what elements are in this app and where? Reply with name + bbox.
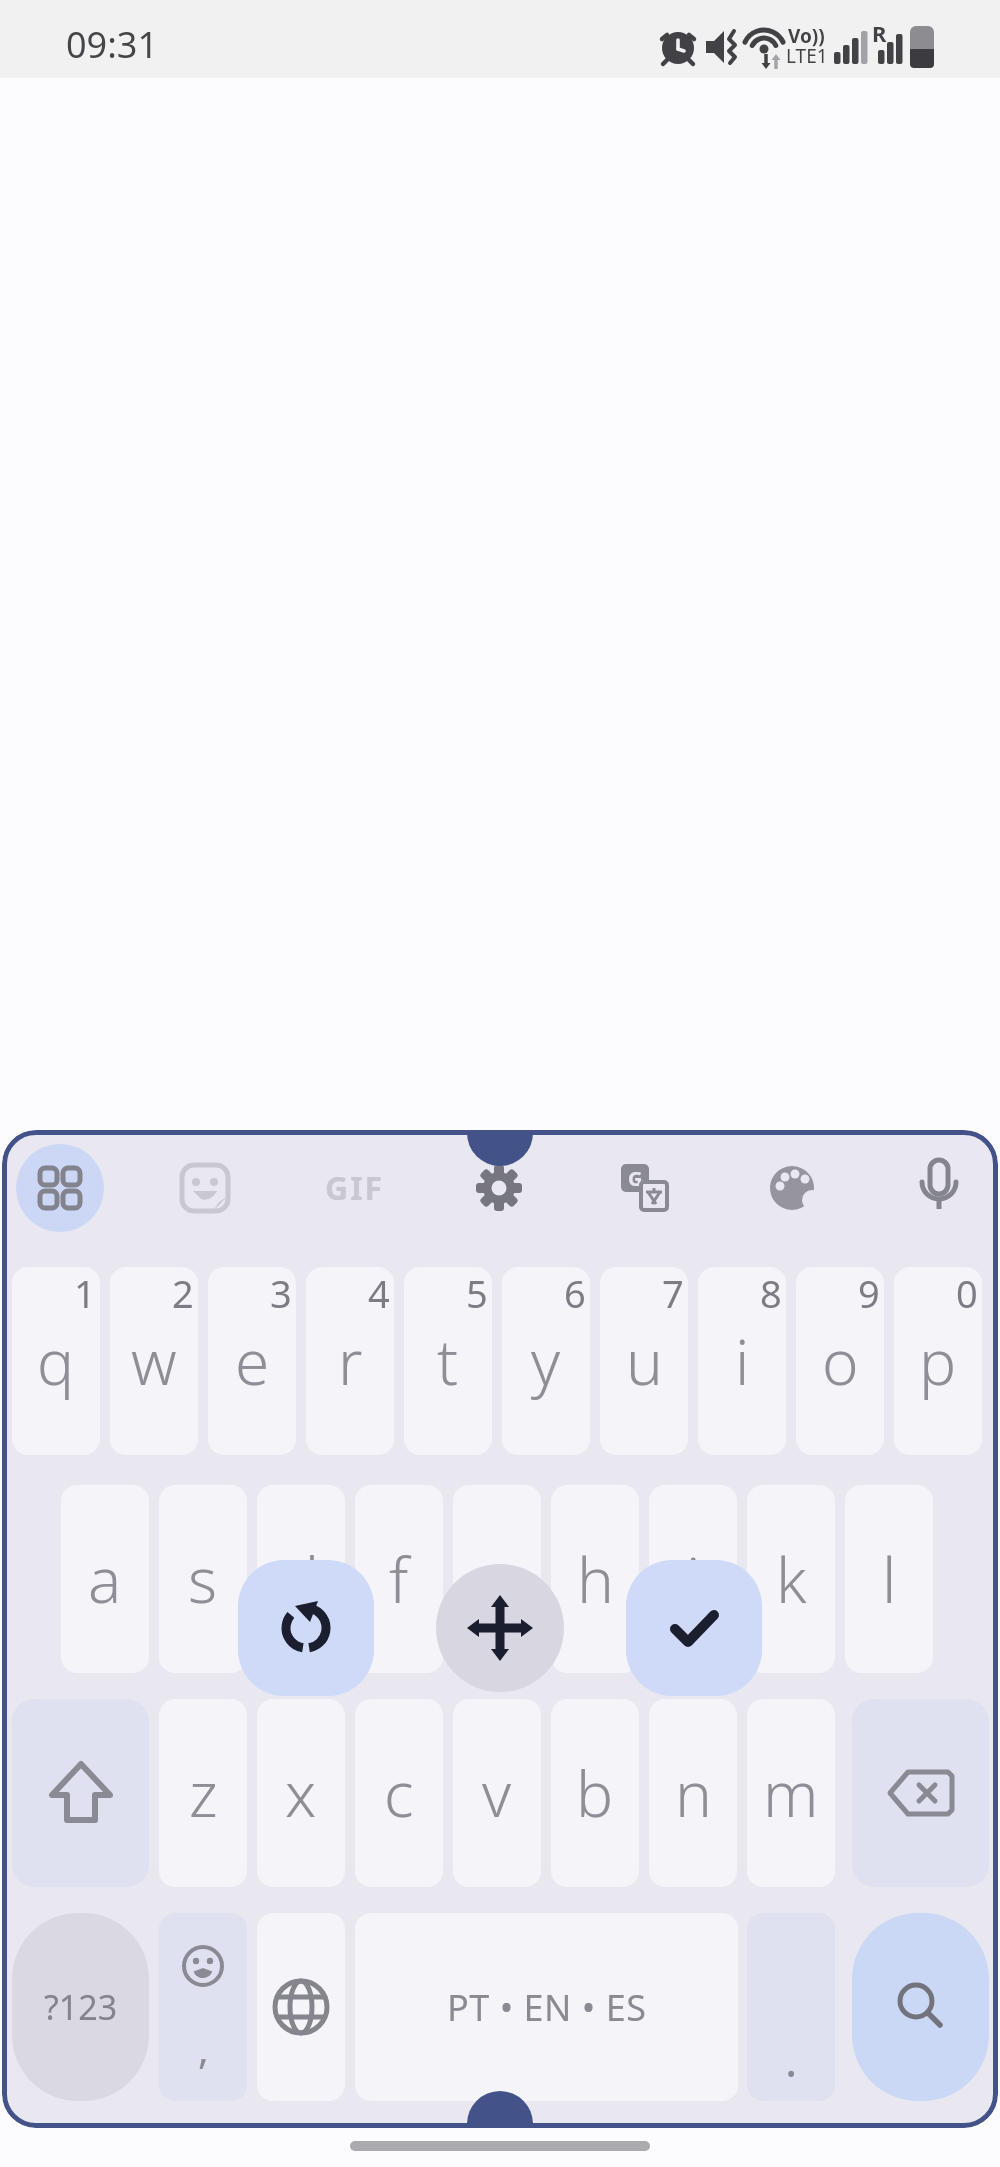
button[interactable]: o [796, 1267, 884, 1455]
staticText: , [198, 2021, 209, 2075]
button[interactable]: . [747, 1913, 835, 2101]
button[interactable]: i [698, 1267, 786, 1455]
staticText: k [776, 1537, 807, 1621]
button[interactable]: z [159, 1699, 247, 1887]
button[interactable]: c [355, 1699, 443, 1887]
button[interactable]: k [747, 1485, 835, 1673]
staticText: z [189, 1751, 218, 1835]
staticText: 09:31 [66, 20, 159, 69]
button[interactable]: d [257, 1485, 345, 1673]
button[interactable]: v [453, 1699, 541, 1887]
staticText: e [235, 1319, 270, 1403]
button[interactable]: w [110, 1267, 198, 1455]
button[interactable] [350, 2141, 650, 2151]
staticText: PT • EN • ES [447, 1983, 647, 2032]
staticText: . [785, 2028, 798, 2091]
staticText: g [478, 1537, 516, 1621]
button[interactable]: ?123 [12, 1913, 149, 2101]
staticText: 2 [172, 1267, 194, 1319]
staticText: c [384, 1751, 414, 1835]
staticText: 3 [270, 1267, 292, 1319]
staticText: t [437, 1319, 459, 1403]
button[interactable]: b [551, 1699, 639, 1887]
staticText: s [188, 1537, 218, 1621]
button[interactable] [257, 1913, 345, 2101]
button[interactable]: u [600, 1267, 688, 1455]
button[interactable] [16, 1144, 104, 1232]
staticText: w [131, 1319, 177, 1403]
button[interactable]: a [61, 1485, 149, 1673]
staticText: 7 [662, 1267, 684, 1319]
button[interactable] [451, 1140, 547, 1236]
staticText: 5 [466, 1267, 488, 1319]
button[interactable]: PT • EN • ES [355, 1913, 738, 2101]
staticText: Vo)) [788, 23, 825, 49]
button[interactable]: h [551, 1485, 639, 1673]
staticText: i [735, 1319, 750, 1403]
staticText: 0 [956, 1267, 978, 1319]
staticText: m [763, 1751, 819, 1835]
staticText: o [822, 1319, 859, 1403]
staticText: G [628, 1165, 643, 1192]
button[interactable]: G [621, 1164, 669, 1212]
button[interactable]: f [355, 1485, 443, 1673]
staticText: 1 [74, 1267, 96, 1319]
staticText: y [531, 1319, 561, 1403]
button[interactable]: j [649, 1485, 737, 1673]
staticText: n [675, 1751, 712, 1835]
button[interactable] [238, 1560, 374, 1696]
staticText: h [577, 1537, 614, 1621]
staticText: b [576, 1751, 614, 1835]
staticText: l [882, 1537, 897, 1621]
button[interactable]: t [404, 1267, 492, 1455]
staticText: f [389, 1537, 409, 1621]
button[interactable]: x [257, 1699, 345, 1887]
button[interactable]: y [502, 1267, 590, 1455]
button[interactable]: g [453, 1485, 541, 1673]
staticText: GIF [325, 1166, 385, 1210]
button[interactable]: p [894, 1267, 982, 1455]
button[interactable]: m [747, 1699, 835, 1887]
staticText: r [338, 1319, 363, 1403]
staticText: ?123 [44, 1984, 118, 2030]
button[interactable]: r [306, 1267, 394, 1455]
button[interactable] [12, 1699, 149, 1887]
button[interactable]: , [159, 1913, 247, 2101]
button[interactable]: n [649, 1699, 737, 1887]
staticText: x [285, 1751, 317, 1835]
button[interactable]: l [845, 1485, 933, 1673]
button[interactable] [744, 1140, 840, 1236]
button[interactable]: s [159, 1485, 247, 1673]
staticText: 4 [368, 1267, 390, 1319]
staticText: j [686, 1537, 701, 1621]
staticText: d [282, 1537, 320, 1621]
button[interactable] [436, 1564, 564, 1692]
staticText: p [919, 1319, 957, 1403]
button[interactable]: GIF [310, 1158, 400, 1218]
staticText: 9 [858, 1267, 880, 1319]
button[interactable] [852, 1913, 989, 2101]
button[interactable]: q [12, 1267, 100, 1455]
button[interactable] [852, 1699, 989, 1887]
staticText: v [482, 1751, 512, 1835]
staticText: a [88, 1537, 122, 1621]
button[interactable] [157, 1140, 253, 1236]
staticText: q [37, 1319, 75, 1403]
staticText: 6 [564, 1267, 586, 1319]
staticText: 8 [760, 1267, 782, 1319]
staticText: u [626, 1319, 663, 1403]
button[interactable]: e [208, 1267, 296, 1455]
button[interactable] [891, 1139, 987, 1235]
staticText: R [872, 18, 887, 48]
staticText: LTE1 [786, 43, 828, 69]
button[interactable] [626, 1560, 762, 1696]
